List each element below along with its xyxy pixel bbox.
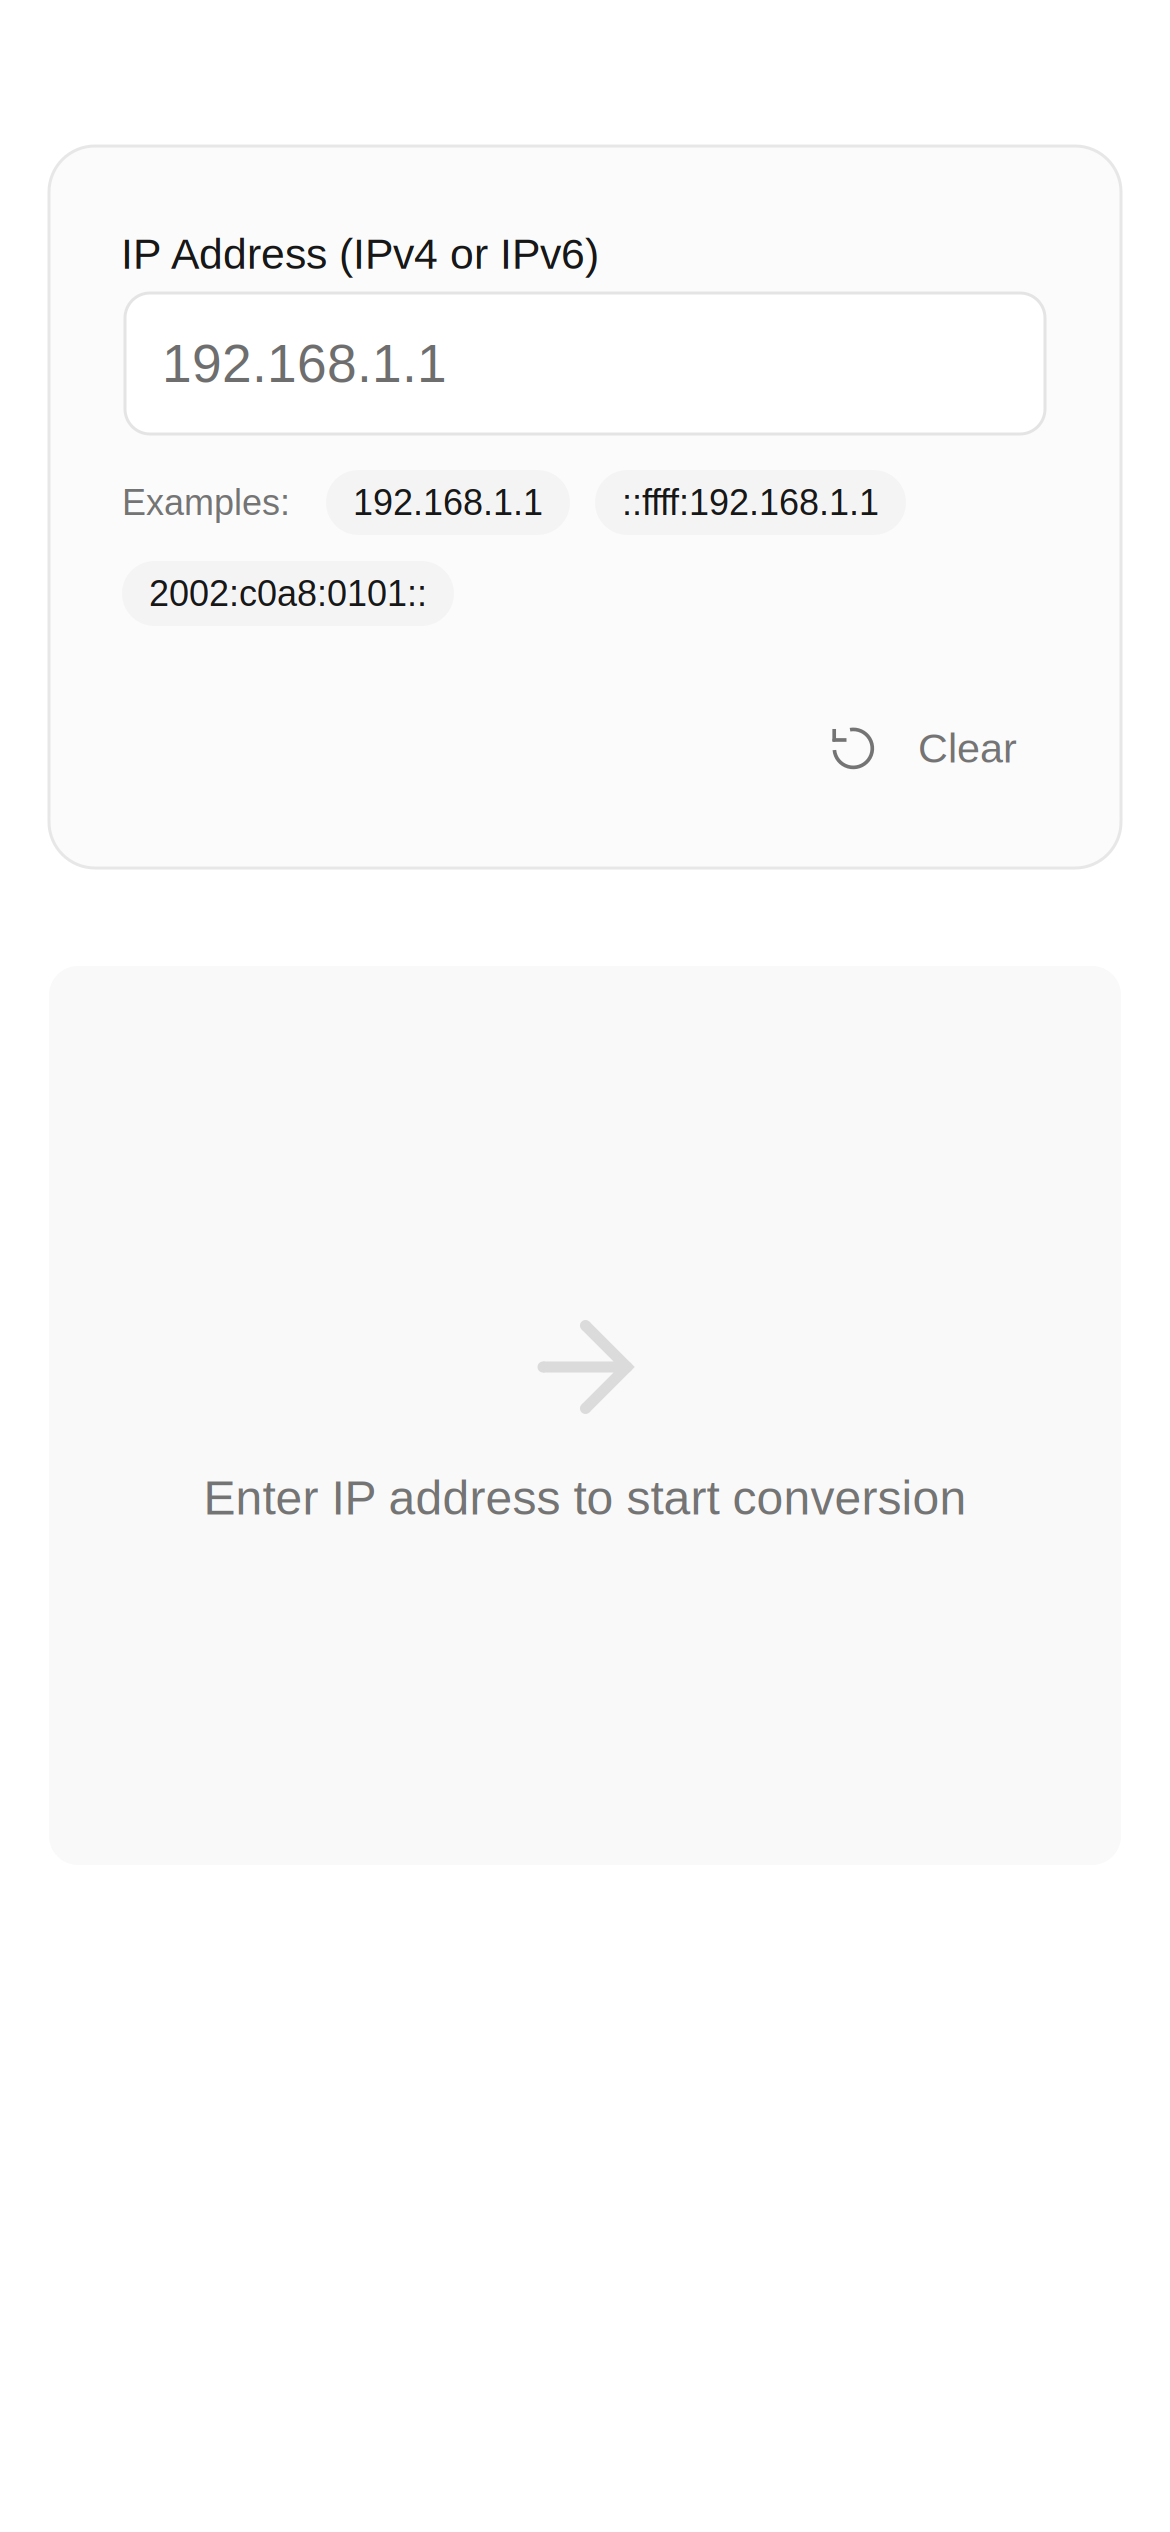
button[interactable]: 2002:c0a8:0101:: <box>122 561 454 626</box>
button[interactable]: Clear <box>826 713 1023 783</box>
staticText: ::ffff:192.168.1.1 <box>622 482 879 523</box>
staticText: 192.168.1.1 <box>162 334 447 393</box>
staticText: Clear <box>918 725 1017 771</box>
button[interactable]: 192.168.1.1 <box>326 470 570 535</box>
button[interactable]: 192.168.1.1 <box>125 293 1045 434</box>
staticText: 2002:c0a8:0101:: <box>149 573 427 614</box>
button[interactable]: ::ffff:192.168.1.1 <box>595 470 906 535</box>
staticText: Examples: <box>122 482 290 523</box>
staticText: 192.168.1.1 <box>353 482 543 523</box>
staticText: Enter IP address to start conversion <box>203 1471 966 1525</box>
staticText: IP Address (IPv4 or IPv6) <box>121 230 599 278</box>
